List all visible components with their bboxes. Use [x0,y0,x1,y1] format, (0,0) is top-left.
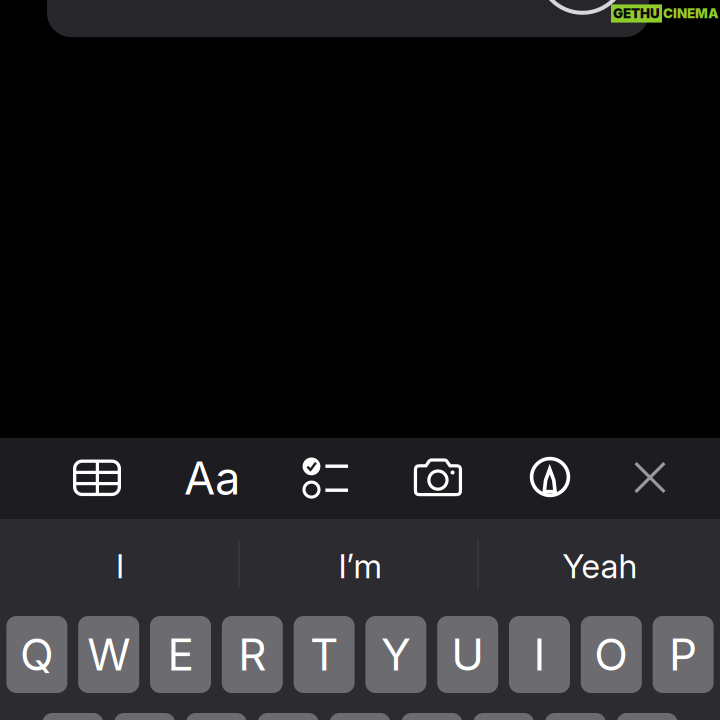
button[interactable]: Camera [414,459,464,497]
button[interactable]: W [78,616,139,693]
button[interactable]: G [329,713,390,720]
staticText: I [533,628,545,681]
button[interactable]: Markup [529,456,570,497]
staticText: T [310,628,338,681]
staticText: Q [20,628,54,681]
button[interactable]: F [258,713,319,720]
button[interactable]: T [294,616,355,693]
staticText: Aa [184,450,240,505]
staticText: U [451,628,484,681]
button[interactable]: Table [73,459,121,496]
staticText: W [87,628,130,681]
button[interactable]: Close keyboard [634,461,666,493]
button[interactable]: I’m [241,519,479,613]
button[interactable]: I [1,519,239,613]
button[interactable]: L [617,713,678,720]
button[interactable]: J [473,713,534,720]
button[interactable]: O [581,616,642,693]
staticText: CINEMA [663,5,719,21]
staticText: O [594,628,628,681]
button[interactable]: S [114,713,175,720]
button[interactable]: H [401,713,462,720]
button[interactable]: U [437,616,498,693]
button[interactable]: R [222,616,283,693]
button[interactable]: Checklist [302,457,348,499]
button[interactable]: Q [6,616,67,693]
button[interactable]: P [653,616,714,693]
staticText: E [167,628,193,681]
button[interactable]: E [150,616,211,693]
button[interactable]: Y [365,616,426,693]
button[interactable]: Format [177,455,247,501]
staticText: I [116,546,124,586]
staticText: Y [381,628,411,681]
staticText: P [669,628,697,681]
staticText: GETHU [613,5,660,21]
button[interactable]: D [186,713,247,720]
button[interactable]: Yeah [481,519,719,613]
staticText: R [238,628,266,681]
button[interactable]: I [509,616,570,693]
staticText: I’m [338,546,381,586]
button[interactable]: A [42,713,103,720]
button[interactable]: K [545,713,606,720]
staticText: Yeah [562,546,637,586]
